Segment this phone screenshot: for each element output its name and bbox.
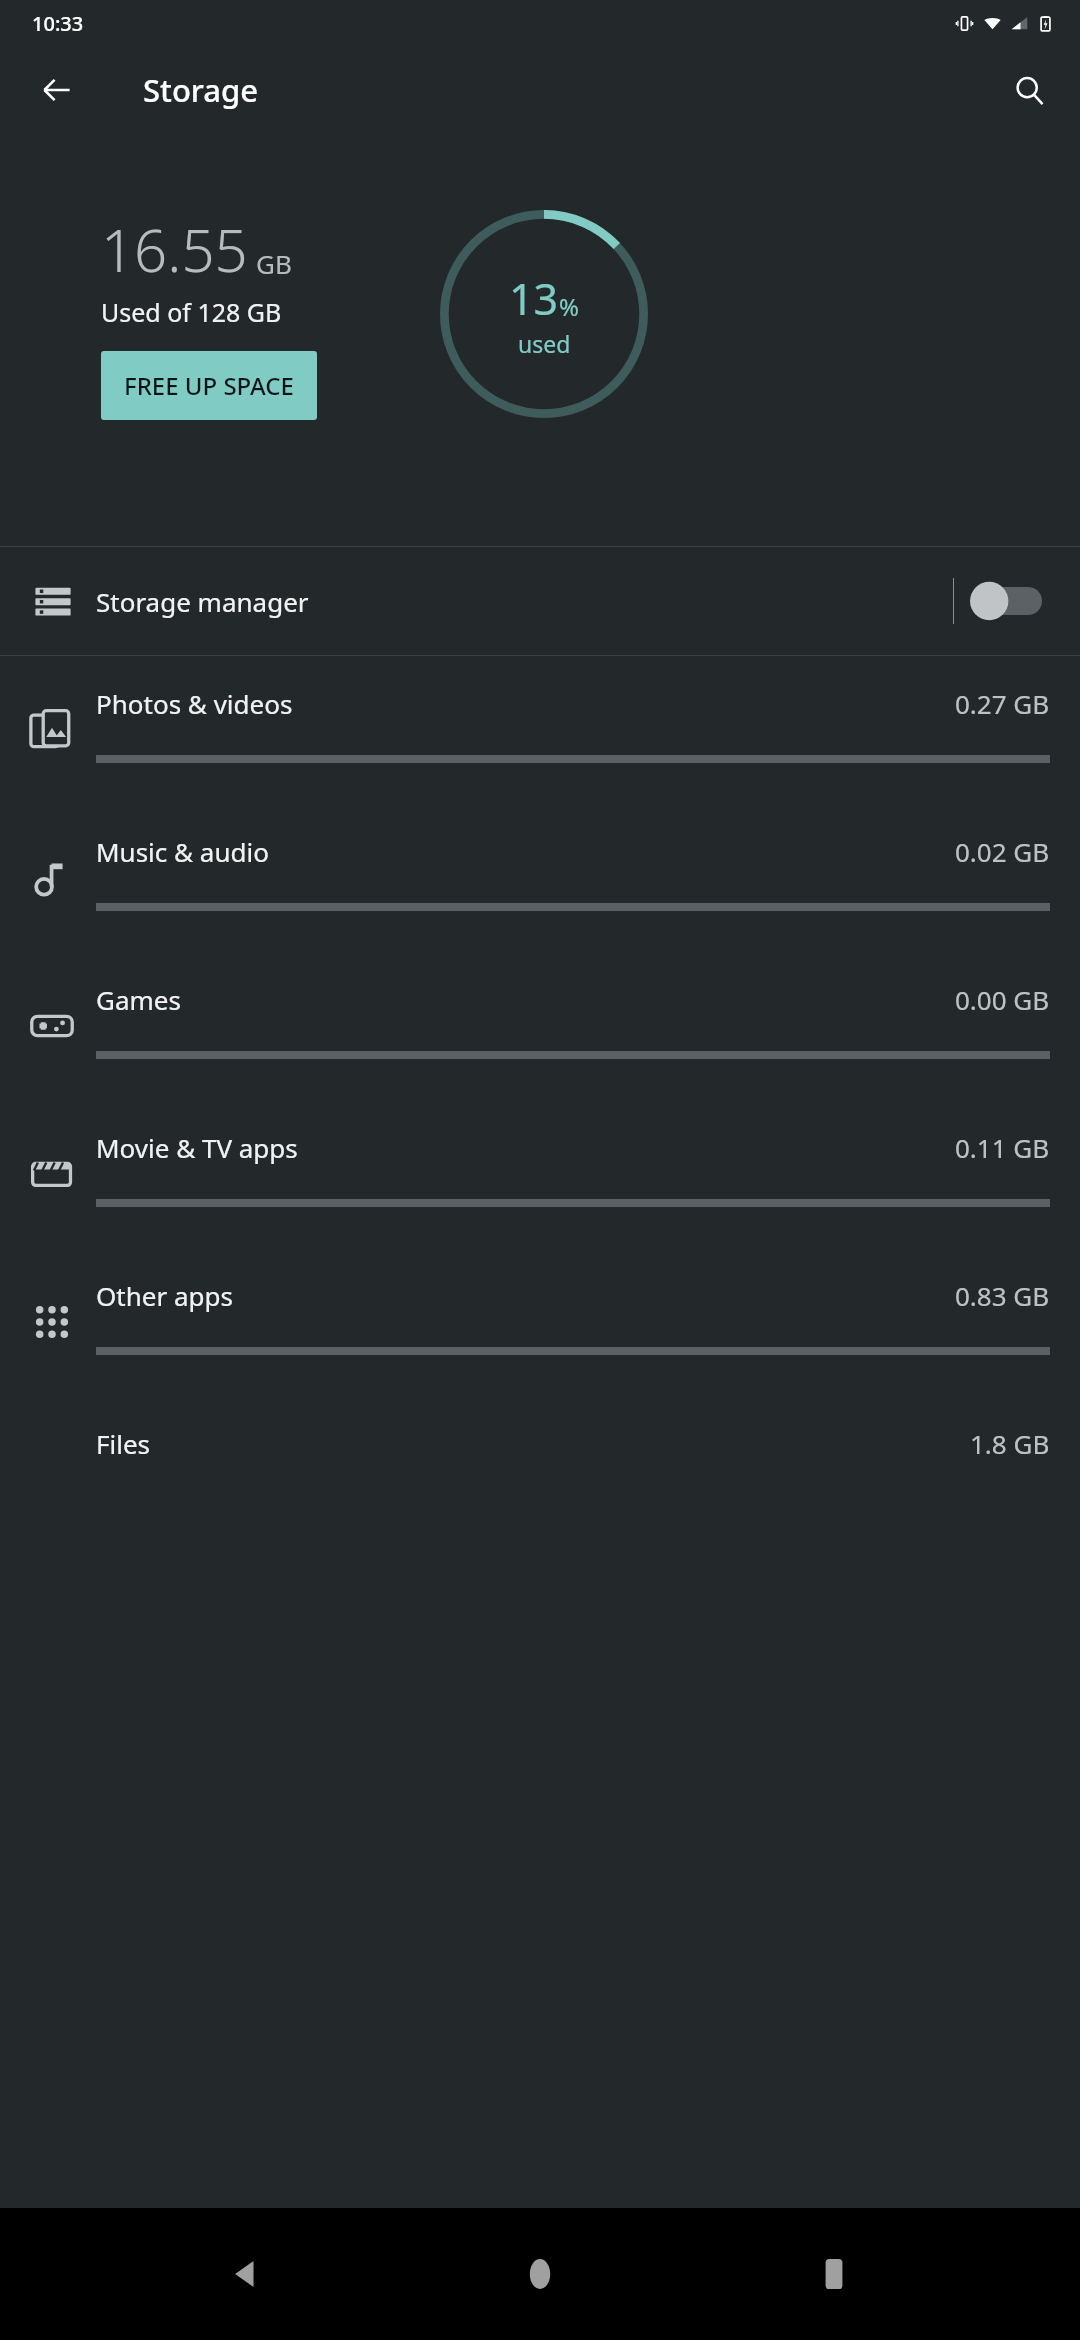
staticText: 10:33 bbox=[32, 10, 84, 37]
staticText: 13 bbox=[509, 269, 559, 328]
staticText: % bbox=[559, 290, 579, 323]
staticText: Games bbox=[96, 982, 181, 1017]
button[interactable]: Home bbox=[492, 2226, 588, 2322]
staticText: Movie & TV apps bbox=[96, 1130, 298, 1165]
staticText: used bbox=[518, 328, 571, 359]
staticText: Other apps bbox=[96, 1278, 233, 1313]
staticText: Photos & videos bbox=[96, 686, 293, 721]
button[interactable]: FREE UP SPACE bbox=[101, 351, 317, 420]
button[interactable]: Music & audio bbox=[0, 804, 1080, 952]
button[interactable]: Search bbox=[1000, 61, 1058, 119]
staticText: Files bbox=[96, 1426, 151, 1461]
button[interactable]: Storage manager toggle bbox=[954, 561, 1058, 641]
staticText: Storage manager bbox=[96, 584, 309, 619]
staticText: FREE UP SPACE bbox=[124, 369, 294, 402]
button[interactable]: Recents bbox=[786, 2226, 882, 2322]
staticText: 0.27 GB bbox=[955, 686, 1050, 721]
staticText: 0.02 GB bbox=[955, 834, 1050, 869]
button[interactable]: Movie & TV apps bbox=[0, 1100, 1080, 1248]
staticText: Storage bbox=[143, 69, 259, 111]
staticText: 1.8 GB bbox=[970, 1426, 1050, 1461]
button[interactable]: Back bbox=[198, 2226, 294, 2322]
staticText: 16.55 bbox=[101, 210, 248, 289]
button[interactable]: Other apps bbox=[0, 1248, 1080, 1396]
button[interactable]: Files bbox=[0, 1396, 1080, 1486]
button[interactable]: Storage manager bbox=[0, 547, 1080, 655]
staticText: 0.83 GB bbox=[955, 1278, 1050, 1313]
staticText: Music & audio bbox=[96, 834, 269, 869]
staticText: Used of 128 GB bbox=[101, 295, 282, 329]
staticText: 0.00 GB bbox=[955, 982, 1050, 1017]
button[interactable]: Back bbox=[28, 61, 86, 119]
button[interactable]: Games bbox=[0, 952, 1080, 1100]
button[interactable]: Photos & videos bbox=[0, 656, 1080, 804]
staticText: GB bbox=[256, 246, 292, 281]
staticText: 0.11 GB bbox=[955, 1130, 1050, 1165]
